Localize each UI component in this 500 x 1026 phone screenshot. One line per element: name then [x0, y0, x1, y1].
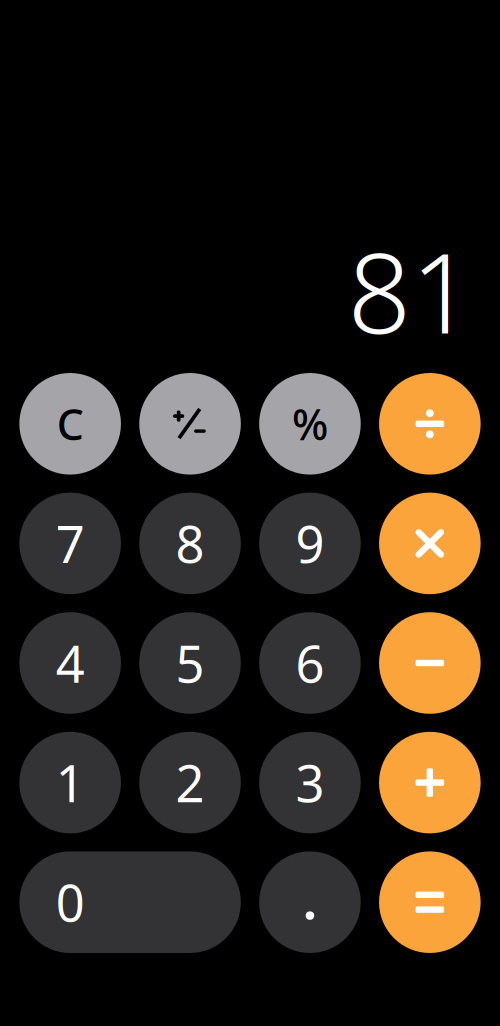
staticText: 9 — [295, 510, 324, 577]
staticText: % — [292, 395, 328, 452]
staticText: 6 — [295, 629, 324, 697]
button[interactable]: Plus Minus — [139, 373, 241, 475]
button[interactable]: 4 — [19, 612, 121, 714]
button[interactable]: 7 — [19, 493, 121, 594]
staticText: 81 — [348, 217, 474, 364]
staticText: 2 — [176, 749, 205, 816]
button[interactable]: Multiply — [379, 493, 481, 594]
button[interactable]: Decimal point — [259, 851, 361, 953]
button[interactable]: 2 — [139, 732, 241, 833]
button[interactable]: 0 — [19, 851, 241, 953]
button[interactable]: 5 — [139, 612, 241, 714]
button[interactable]: 9 — [259, 493, 361, 594]
button[interactable]: 6 — [259, 612, 361, 714]
button[interactable]: Divide — [379, 373, 481, 475]
button[interactable]: Plus — [379, 732, 481, 833]
button[interactable]: 3 — [259, 732, 361, 833]
staticText: 3 — [295, 749, 324, 816]
button[interactable]: 8 — [139, 493, 241, 594]
staticText: 4 — [56, 629, 85, 697]
staticText: C — [57, 395, 84, 452]
staticText: 7 — [56, 510, 85, 577]
staticText: 0 — [56, 869, 85, 936]
button[interactable]: Clear — [19, 373, 121, 475]
button[interactable]: Percent — [259, 373, 361, 475]
button[interactable]: Equals — [379, 851, 481, 953]
staticText: 8 — [176, 510, 205, 577]
button[interactable]: 1 — [19, 732, 121, 833]
staticText: 1 — [56, 749, 85, 816]
staticText: 5 — [176, 629, 205, 697]
button[interactable]: Minus — [379, 612, 481, 714]
